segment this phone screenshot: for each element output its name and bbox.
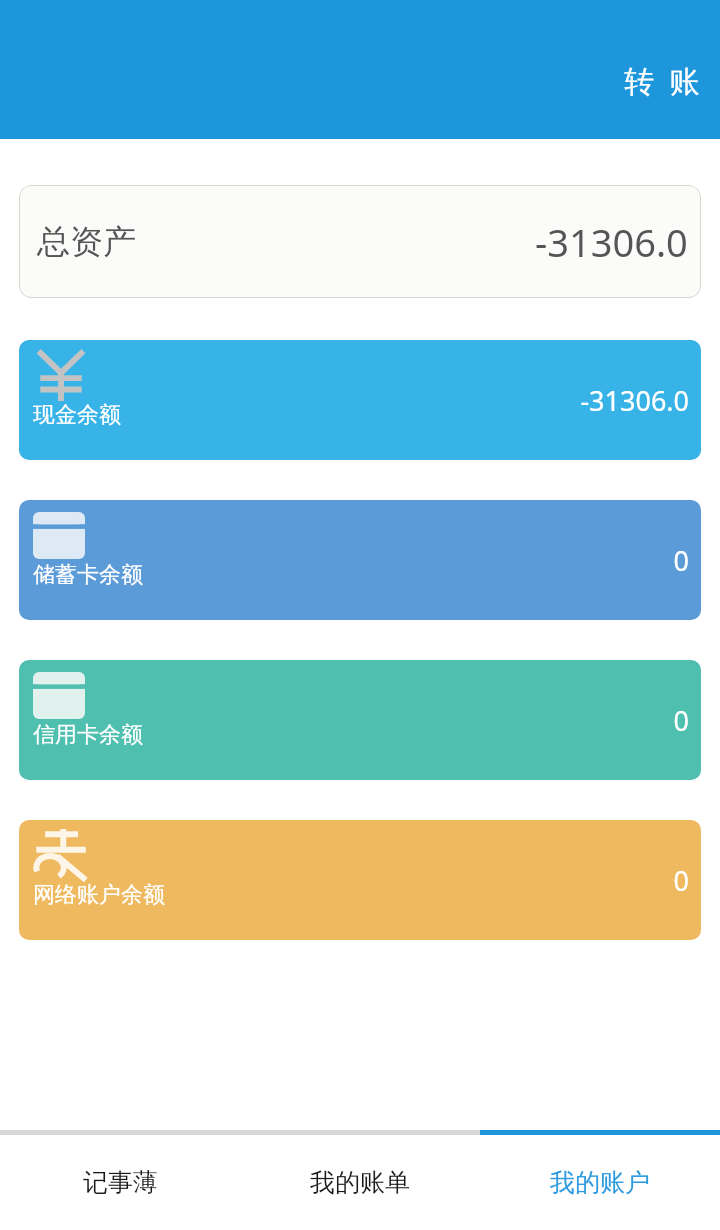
staticText: 记事薄 [83, 1167, 158, 1198]
staticText: 转 账 [624, 60, 700, 101]
staticText: 网络账户余额 [33, 881, 165, 909]
button[interactable]: 记事薄 [0, 1135, 240, 1230]
button[interactable]: 0 [19, 500, 701, 620]
button[interactable]: 0 [19, 820, 701, 940]
button[interactable]: 转 账 [604, 50, 720, 111]
staticText: 信用卡余额 [33, 721, 143, 749]
staticText: 0 [673, 542, 689, 579]
staticText: 总资产 [37, 221, 136, 263]
button[interactable]: -31306.0 [19, 340, 701, 460]
staticText: 现金余额 [33, 401, 121, 429]
staticText: 0 [673, 862, 689, 899]
staticText: -31306.0 [580, 382, 689, 419]
staticText: 储蓄卡余额 [33, 561, 143, 589]
button[interactable]: 我的账户 [480, 1135, 720, 1230]
button[interactable]: 0 [19, 660, 701, 780]
button[interactable]: 我的账单 [240, 1135, 480, 1230]
staticText: -31306.0 [535, 216, 688, 268]
staticText: 0 [673, 702, 689, 739]
staticText: 我的账户 [550, 1167, 650, 1198]
staticText: 我的账单 [310, 1167, 410, 1198]
button[interactable]: 总资产 [19, 185, 701, 298]
